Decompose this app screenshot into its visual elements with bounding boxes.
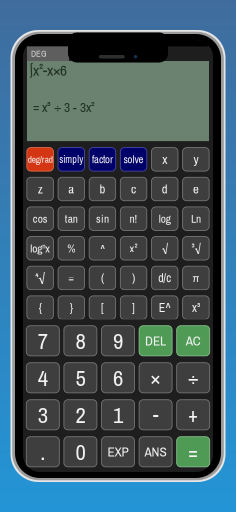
staticText: tan	[65, 211, 78, 226]
button[interactable]: ANS	[139, 437, 172, 467]
staticText: b	[99, 180, 105, 198]
staticText: z	[38, 180, 43, 198]
staticText: Ln	[191, 211, 201, 226]
staticText: d	[162, 180, 168, 198]
staticText: x²	[130, 241, 138, 256]
button[interactable]: tan	[58, 207, 84, 230]
button[interactable]: x³	[183, 296, 209, 319]
button[interactable]: factor	[89, 148, 116, 171]
staticText: 8	[75, 325, 85, 356]
button[interactable]: DEL	[139, 326, 172, 356]
button[interactable]: 6	[101, 363, 134, 393]
button[interactable]: ×	[139, 363, 172, 393]
staticText: ]	[132, 299, 135, 316]
button[interactable]: 4	[26, 363, 59, 393]
button[interactable]: ]	[120, 296, 147, 319]
staticText: deg/rad	[28, 153, 53, 166]
button[interactable]: ^	[89, 236, 116, 260]
button[interactable]: .	[26, 437, 59, 467]
button[interactable]: d/c	[151, 266, 178, 290]
button[interactable]: x	[151, 148, 178, 171]
button[interactable]: log	[151, 207, 178, 230]
button[interactable]: π	[183, 266, 209, 290]
button[interactable]: cos	[27, 207, 53, 230]
button[interactable]: ⁴√	[27, 266, 53, 290]
button[interactable]: b	[89, 177, 116, 201]
staticText: 4	[38, 362, 48, 393]
staticText: {	[39, 299, 42, 316]
button[interactable]: simply	[58, 148, 84, 171]
button[interactable]: -	[139, 400, 172, 430]
button[interactable]: 5	[64, 363, 97, 393]
staticText: e	[193, 180, 199, 198]
button[interactable]: =	[177, 437, 210, 467]
button[interactable]: x²	[120, 236, 147, 260]
button[interactable]: d	[151, 177, 178, 201]
button[interactable]: {	[27, 296, 53, 319]
staticText: sin	[96, 211, 109, 226]
staticText: 0	[75, 436, 85, 467]
button[interactable]: a	[58, 177, 84, 201]
staticText: ∫x²-x×6	[29, 60, 67, 81]
staticText: EXP	[107, 443, 128, 461]
button[interactable]: deg/rad	[27, 148, 53, 171]
staticText: = x³ ÷ 3 - 3x²	[33, 98, 95, 116]
button[interactable]: (	[89, 266, 116, 290]
staticText: ³√	[191, 241, 200, 256]
button[interactable]: =	[58, 266, 84, 290]
button[interactable]: AC	[177, 326, 210, 356]
staticText: ^	[100, 241, 104, 256]
staticText: √	[162, 241, 168, 256]
button[interactable]: √	[151, 236, 178, 260]
staticText: y	[193, 151, 198, 168]
button[interactable]: )	[120, 266, 147, 290]
staticText: 2	[75, 399, 85, 430]
staticText: a	[68, 180, 74, 198]
button[interactable]: c	[120, 177, 147, 201]
staticText: ×	[151, 364, 161, 391]
staticText: simply	[59, 153, 83, 166]
button[interactable]: solve	[120, 148, 147, 171]
button[interactable]: y	[183, 148, 209, 171]
button[interactable]: %	[58, 236, 84, 260]
button[interactable]: ÷	[177, 363, 210, 393]
staticText: DEL	[145, 332, 166, 350]
staticText: n!	[130, 211, 138, 226]
button[interactable]: e	[183, 177, 209, 201]
staticText: x³	[192, 299, 200, 316]
staticText: =	[68, 270, 74, 286]
staticText: log	[159, 211, 171, 226]
staticText: -	[153, 401, 158, 428]
staticText: solve	[124, 152, 144, 167]
staticText: .	[40, 436, 45, 467]
staticText: logⁿx	[30, 241, 50, 256]
button[interactable]: E^	[151, 296, 178, 319]
staticText: cos	[33, 211, 48, 226]
staticText: factor	[92, 152, 113, 167]
button[interactable]: 2	[64, 400, 97, 430]
button[interactable]: 1	[101, 400, 134, 430]
button[interactable]: ³√	[183, 236, 209, 260]
button[interactable]: 0	[64, 437, 97, 467]
staticText: ⁴√	[35, 270, 45, 286]
button[interactable]: EXP	[101, 437, 134, 467]
button[interactable]: 9	[101, 326, 134, 356]
button[interactable]: z	[27, 177, 53, 201]
staticText: )	[132, 270, 135, 286]
staticText: DEG	[31, 48, 47, 60]
button[interactable]: +	[177, 400, 210, 430]
staticText: E^	[159, 299, 171, 316]
button[interactable]: sin	[89, 207, 116, 230]
button[interactable]: }	[58, 296, 84, 319]
button[interactable]: Ln	[183, 207, 209, 230]
staticText: 1	[113, 399, 123, 430]
button[interactable]: 3	[26, 400, 59, 430]
button[interactable]: 8	[64, 326, 97, 356]
staticText: π	[192, 270, 199, 286]
staticText: 5	[75, 362, 85, 393]
button[interactable]: [	[89, 296, 116, 319]
button[interactable]: n!	[120, 207, 147, 230]
button[interactable]: logⁿx	[27, 236, 53, 260]
staticText: x	[162, 151, 167, 168]
button[interactable]: 7	[26, 326, 59, 356]
